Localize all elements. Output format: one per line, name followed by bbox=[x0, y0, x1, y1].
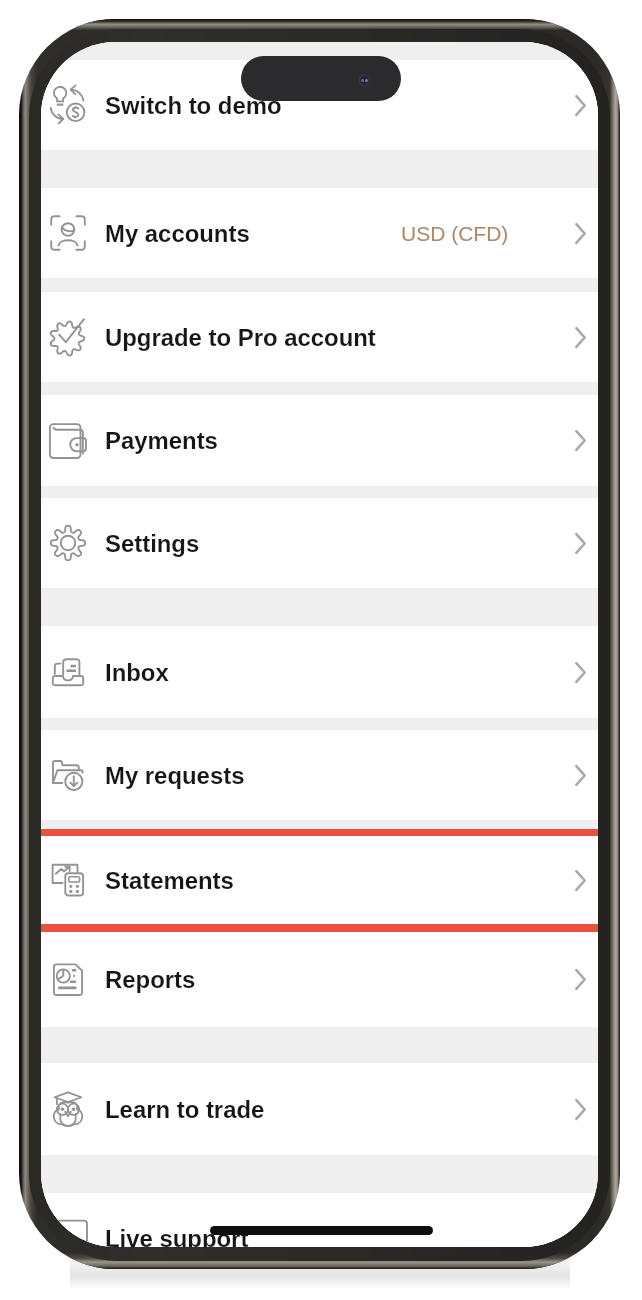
staticText: USD (CFD) bbox=[401, 222, 509, 245]
staticText: Payments bbox=[105, 427, 218, 454]
button[interactable]: Reports bbox=[41, 932, 598, 1027]
staticText: Inbox bbox=[105, 659, 169, 686]
button[interactable]: Upgrade to Pro account bbox=[41, 292, 598, 382]
staticText: Learn to trade bbox=[105, 1096, 265, 1123]
button[interactable]: Switch to demo bbox=[41, 60, 598, 150]
staticText: Statements bbox=[105, 867, 234, 894]
button[interactable]: My requests bbox=[41, 730, 598, 820]
button[interactable]: Settings bbox=[41, 498, 598, 588]
button[interactable]: Live support bbox=[41, 1193, 598, 1247]
staticText: Settings bbox=[105, 530, 200, 557]
staticText: My accounts bbox=[105, 220, 250, 247]
button[interactable]: Inbox bbox=[41, 626, 598, 718]
staticText: My requests bbox=[105, 762, 245, 789]
staticText: Live support bbox=[105, 1225, 249, 1247]
button[interactable]: Payments bbox=[41, 395, 598, 486]
button[interactable]: Statements bbox=[41, 836, 598, 924]
other: Dynamic island bbox=[241, 56, 401, 101]
staticText: Upgrade to Pro account bbox=[105, 324, 376, 351]
staticText: Switch to demo bbox=[105, 92, 282, 119]
button[interactable]: My accounts bbox=[41, 188, 598, 278]
staticText: Reports bbox=[105, 966, 196, 993]
button[interactable]: Learn to trade bbox=[41, 1063, 598, 1155]
